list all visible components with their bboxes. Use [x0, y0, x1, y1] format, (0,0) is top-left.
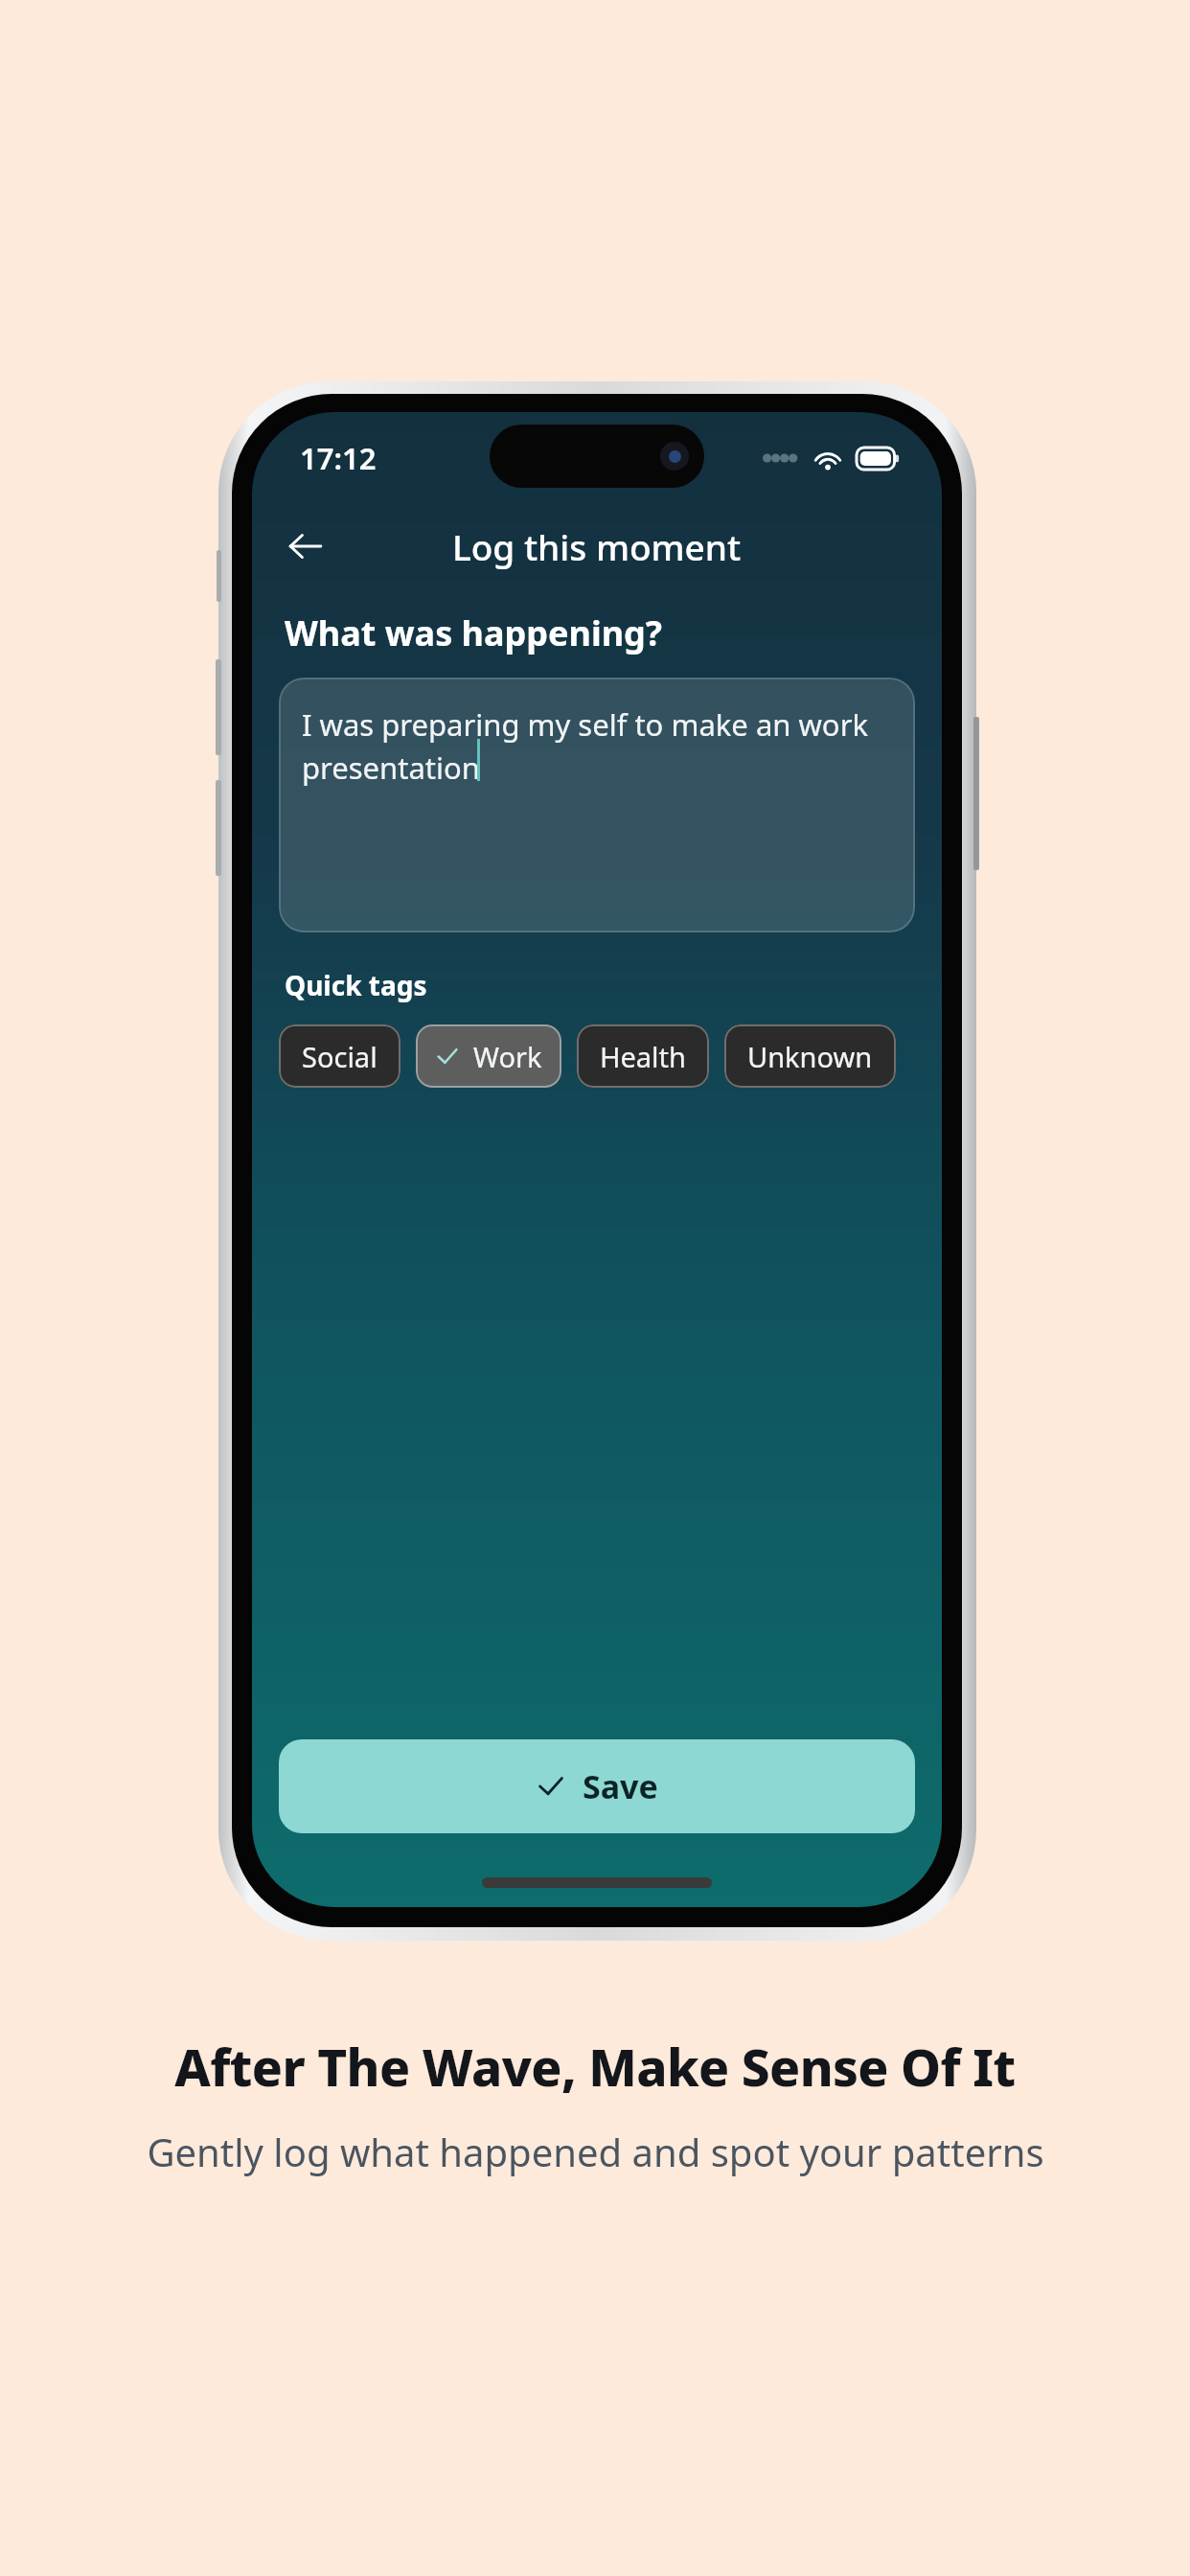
staticText: Quick tags [285, 967, 427, 1003]
staticText: What was happening? [285, 609, 663, 656]
staticText: After The Wave, Make Sense Of It [174, 2032, 1016, 2101]
staticText: Log this moment [452, 522, 742, 570]
button[interactable]: Save [279, 1739, 915, 1833]
staticText: Unknown [747, 1038, 873, 1075]
staticText: Save [583, 1764, 658, 1808]
staticText: I was preparing my self to make an work … [302, 704, 892, 788]
button[interactable]: Health [577, 1024, 709, 1088]
staticText: Health [600, 1038, 686, 1075]
button[interactable]: Back [271, 512, 340, 581]
button[interactable]: Unknown [724, 1024, 896, 1088]
button[interactable]: Work [416, 1024, 561, 1088]
button[interactable]: I was preparing my self to make an work … [279, 678, 915, 932]
staticText: Work [473, 1038, 542, 1075]
staticText: Social [302, 1038, 378, 1075]
button[interactable]: Social [279, 1024, 400, 1088]
staticText: Gently log what happened and spot your p… [147, 2126, 1044, 2177]
staticText: 17:12 [300, 438, 377, 478]
